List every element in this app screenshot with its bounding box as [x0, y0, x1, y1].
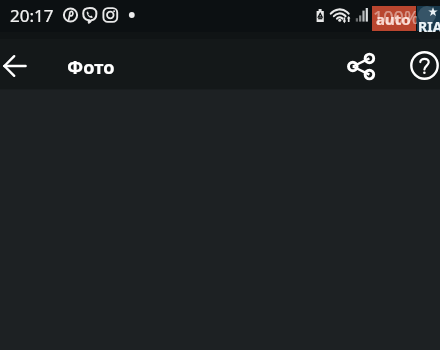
staticText: 100%	[373, 5, 419, 30]
button[interactable]: Help	[402, 43, 440, 87]
button[interactable]: Share	[339, 44, 383, 88]
staticText: Фото	[67, 55, 115, 80]
staticText: RIA	[418, 17, 440, 36]
button[interactable]: Back	[0, 44, 37, 88]
staticText: 20:17	[10, 4, 54, 27]
staticText: auto	[376, 9, 411, 29]
